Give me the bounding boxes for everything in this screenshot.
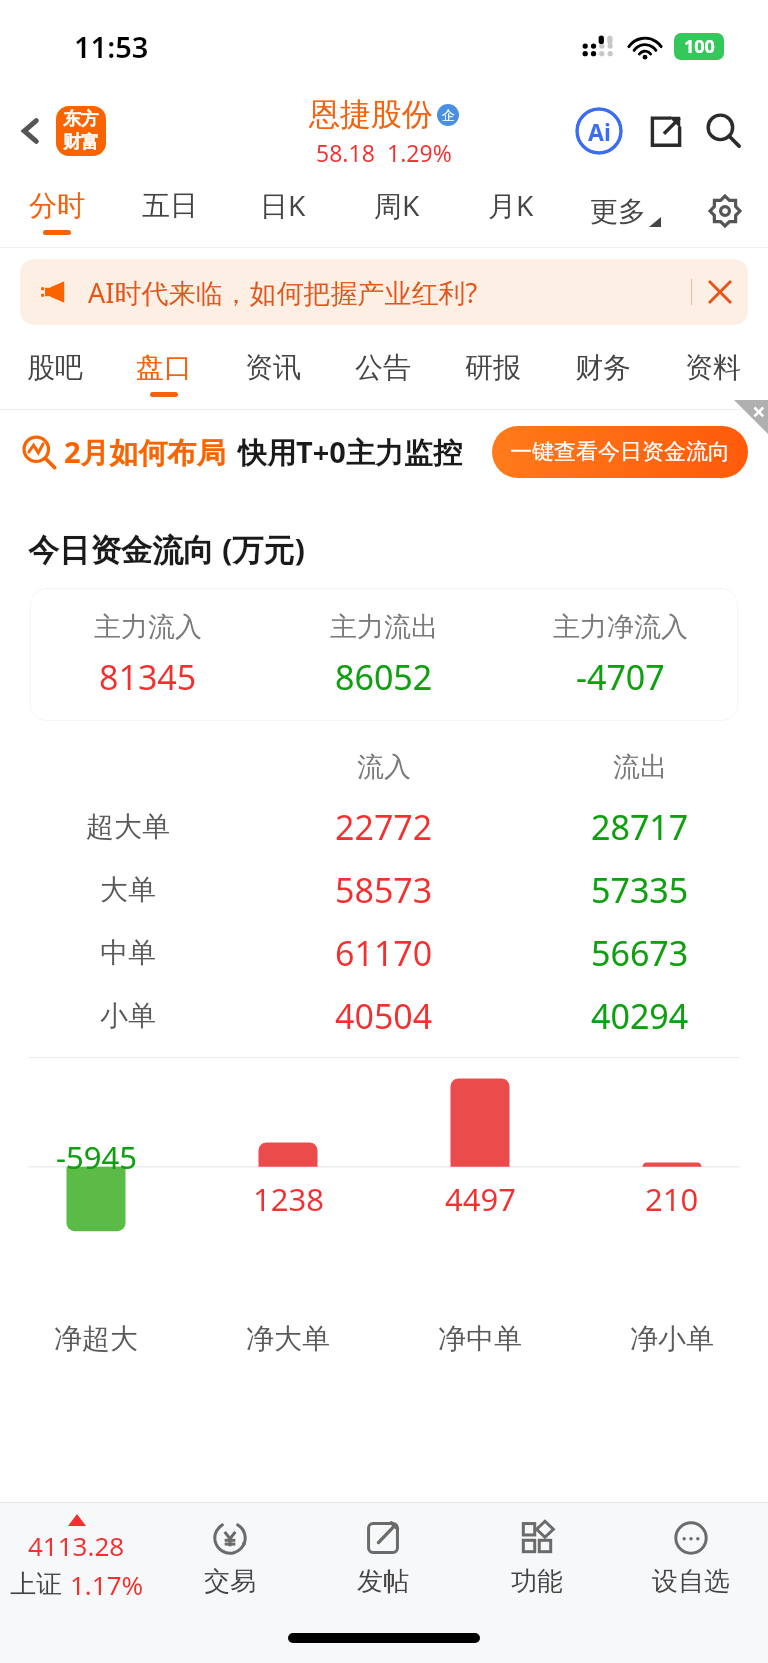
- staticText: AI时代来临，如何把握产业红利?: [88, 274, 478, 311]
- staticText: 快用T+0主力监控: [238, 432, 462, 472]
- button[interactable]: 财务: [548, 336, 658, 410]
- staticText: 分时: [29, 188, 85, 223]
- staticText: 流入: [357, 750, 411, 784]
- button[interactable]: 资讯: [218, 336, 328, 410]
- staticText: 一键查看今日资金流向: [510, 438, 730, 466]
- staticText: 净中单: [438, 1321, 522, 1356]
- staticText: 40294: [591, 993, 689, 1039]
- button[interactable]: 恩捷股份: [309, 95, 459, 168]
- button[interactable]: 4113.28: [0, 1503, 153, 1613]
- button[interactable]: Trade: [153, 1503, 306, 1613]
- button[interactable]: Settings: [682, 174, 768, 248]
- button[interactable]: Share: [640, 105, 692, 157]
- staticText: 资讯: [245, 350, 301, 385]
- staticText: 2月如何布局: [64, 432, 226, 472]
- button[interactable]: Post: [306, 1503, 460, 1613]
- button[interactable]: 主力流入: [30, 588, 738, 721]
- staticText: 五日: [142, 188, 198, 223]
- staticText: 日K: [260, 186, 306, 224]
- button[interactable]: 资料: [658, 336, 768, 410]
- staticText: 净大单: [246, 1321, 330, 1356]
- button[interactable]: Close: [734, 400, 768, 434]
- button[interactable]: AI assistant: [572, 104, 626, 158]
- staticText: 81345: [99, 654, 197, 700]
- staticText: 主力流入: [94, 610, 202, 644]
- button[interactable]: 分时: [0, 174, 113, 248]
- button[interactable]: Close ad: [692, 259, 748, 325]
- staticText: 58573: [335, 867, 433, 913]
- button[interactable]: 公告: [328, 336, 438, 410]
- staticText: 小单: [100, 998, 156, 1033]
- staticText: 主力净流入: [553, 610, 688, 644]
- button[interactable]: Features: [460, 1503, 614, 1613]
- staticText: 4497: [445, 1178, 516, 1220]
- staticText: 更多: [590, 194, 646, 229]
- button[interactable]: 盘口: [109, 336, 218, 410]
- staticText: 11:53: [74, 27, 149, 66]
- staticText: 210: [645, 1178, 699, 1220]
- staticText: 功能: [511, 1565, 563, 1598]
- staticText: 东方: [63, 108, 99, 131]
- staticText: 1.17%: [70, 1567, 144, 1602]
- staticText: -4707: [576, 654, 665, 700]
- staticText: 资料: [685, 350, 741, 385]
- button[interactable]: 五日: [113, 174, 226, 248]
- staticText: 1238: [253, 1178, 324, 1220]
- button[interactable]: Search: [698, 105, 750, 157]
- button[interactable]: 小单: [0, 984, 768, 1047]
- button[interactable]: AI时代来临，如何把握产业红利?: [20, 259, 748, 325]
- staticText: 57335: [591, 867, 689, 913]
- button[interactable]: 日K: [226, 174, 340, 248]
- staticText: 净超大: [54, 1321, 138, 1356]
- staticText: 企: [442, 107, 455, 123]
- button[interactable]: 更多: [568, 174, 682, 248]
- staticText: 22772: [335, 804, 433, 850]
- staticText: 周K: [374, 186, 420, 224]
- button[interactable]: 股吧: [0, 336, 109, 410]
- staticText: 61170: [335, 930, 433, 976]
- staticText: 4113.28: [28, 1528, 125, 1563]
- staticText: 公告: [355, 350, 411, 385]
- staticText: 研报: [465, 350, 521, 385]
- staticText: Ai: [588, 116, 611, 147]
- button[interactable]: 中单: [0, 921, 768, 984]
- button[interactable]: 月K: [454, 174, 568, 248]
- staticText: 净小单: [630, 1321, 714, 1356]
- staticText: 中单: [100, 935, 156, 970]
- staticText: 月K: [488, 186, 534, 224]
- staticText: 28717: [591, 804, 689, 850]
- staticText: 超大单: [86, 809, 170, 844]
- button[interactable]: 一键查看今日资金流向: [492, 426, 748, 478]
- staticText: 设自选: [652, 1565, 730, 1598]
- staticText: -5945: [56, 1136, 137, 1178]
- button[interactable]: Back: [8, 108, 54, 154]
- staticText: 100: [684, 34, 715, 59]
- staticText: 财富: [63, 131, 99, 154]
- button[interactable]: 超大单: [0, 795, 768, 858]
- staticText: 盘口: [136, 350, 192, 385]
- staticText: 56673: [591, 930, 689, 976]
- button[interactable]: Add to watchlist: [614, 1503, 768, 1613]
- staticText: 86052: [335, 654, 433, 700]
- staticText: 40504: [335, 993, 433, 1039]
- button[interactable]: 研报: [438, 336, 548, 410]
- staticText: 交易: [204, 1565, 256, 1598]
- staticText: 流出: [613, 750, 667, 784]
- staticText: 发帖: [357, 1565, 409, 1598]
- staticText: 大单: [100, 872, 156, 907]
- staticText: 恩捷股份: [309, 95, 433, 134]
- staticText: 主力流出: [330, 610, 438, 644]
- staticText: 今日资金流向 (万元): [28, 528, 306, 570]
- staticText: 财务: [575, 350, 631, 385]
- button[interactable]: 周K: [340, 174, 454, 248]
- staticText: 58.18: [316, 137, 375, 168]
- staticText: 1.29%: [387, 137, 452, 168]
- staticText: 上证: [10, 1568, 62, 1601]
- button[interactable]: 大单: [0, 858, 768, 921]
- button[interactable]: East Money: [56, 106, 106, 156]
- staticText: 股吧: [27, 350, 83, 385]
- button[interactable]: 2月如何布局: [22, 410, 748, 494]
